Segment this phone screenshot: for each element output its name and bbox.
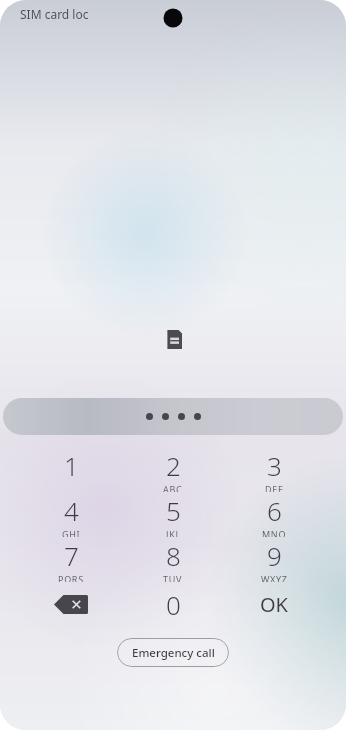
- staticText: WXYZ: [261, 573, 288, 582]
- staticText: 4: [64, 493, 79, 528]
- button[interactable]: 8: [133, 538, 213, 582]
- staticText: SIM card loc: [20, 6, 89, 22]
- staticText: 2: [166, 448, 181, 483]
- staticText: DEF: [265, 483, 284, 492]
- staticText: 6: [267, 493, 282, 528]
- staticText: ABC: [163, 483, 183, 492]
- staticText: TUV: [163, 573, 183, 582]
- button[interactable]: Backspace: [31, 586, 111, 622]
- button[interactable]: 0: [133, 586, 213, 622]
- button[interactable]: 3: [234, 448, 314, 492]
- staticText: 1: [64, 448, 79, 483]
- button[interactable]: [3, 398, 343, 435]
- staticText: JKL: [166, 528, 181, 537]
- staticText: Emergency call: [132, 645, 215, 661]
- button[interactable]: 2: [133, 448, 213, 492]
- staticText: 9: [267, 538, 282, 573]
- button[interactable]: 7: [31, 538, 111, 582]
- staticText: 0: [166, 587, 181, 622]
- staticText: GHI: [62, 528, 81, 537]
- staticText: OK: [260, 591, 288, 618]
- button[interactable]: 9: [234, 538, 314, 582]
- staticText: 5: [166, 493, 181, 528]
- staticText: 8: [166, 538, 181, 573]
- button[interactable]: 4: [31, 493, 111, 537]
- button[interactable]: 1: [31, 448, 111, 492]
- button[interactable]: 5: [133, 493, 213, 537]
- staticText: 7: [64, 538, 79, 573]
- button[interactable]: 6: [234, 493, 314, 537]
- button[interactable]: Emergency call: [117, 638, 229, 667]
- button[interactable]: OK: [234, 586, 314, 622]
- staticText: PQRS: [58, 573, 84, 582]
- staticText: 3: [267, 448, 282, 483]
- staticText: MNO: [262, 528, 287, 537]
